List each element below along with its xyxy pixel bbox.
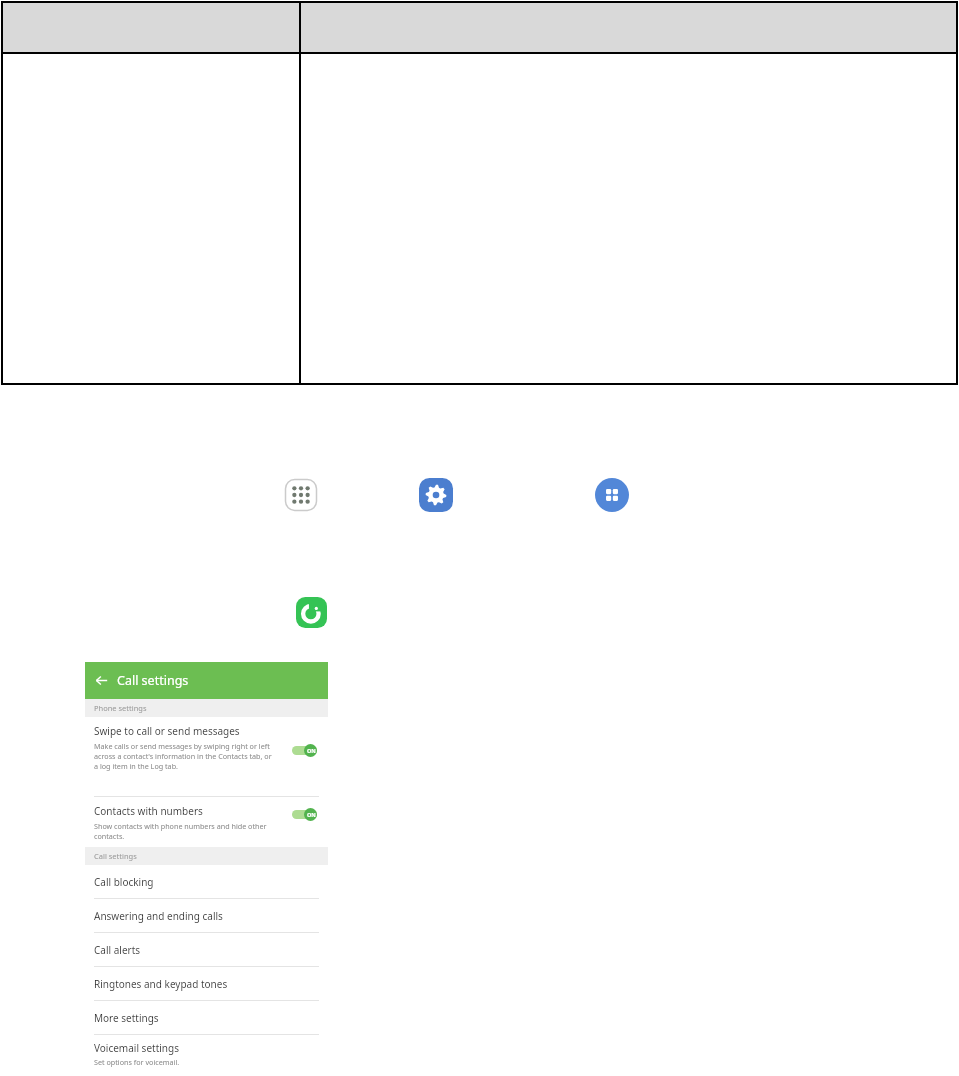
button[interactable]: Back	[94, 673, 109, 688]
staticText: Answering and ending calls	[94, 909, 223, 923]
staticText: Ringtones and keypad tones	[94, 977, 228, 991]
staticText: Show contacts with phone numbers and hid…	[94, 821, 276, 841]
button[interactable]: Settings	[419, 478, 453, 512]
button[interactable]: Answering and ending calls	[85, 899, 328, 932]
staticText: Call settings	[117, 672, 189, 689]
button[interactable]: Apps	[284, 478, 318, 512]
button[interactable]: Swipe to call or send messages	[85, 717, 328, 796]
staticText: Voicemail settings	[94, 1041, 179, 1055]
staticText: Phone settings	[94, 703, 147, 713]
button[interactable]: Apps grid	[595, 478, 629, 512]
button[interactable]: Toggle on	[292, 808, 317, 821]
button[interactable]: Contacts with numbers	[85, 797, 328, 847]
staticText: Call alerts	[94, 943, 141, 957]
staticText: Swipe to call or send messages	[94, 724, 240, 738]
staticText: ON	[307, 747, 316, 754]
button[interactable]: Call alerts	[85, 933, 328, 966]
button[interactable]: More settings	[85, 1001, 328, 1034]
button[interactable]: Voicemail settings	[85, 1035, 328, 1069]
staticText: Call blocking	[94, 875, 154, 889]
staticText: Set options for voicemail.	[94, 1057, 180, 1067]
button[interactable]: Call blocking	[85, 865, 328, 898]
button[interactable]: Ringtones and keypad tones	[85, 967, 328, 1000]
button[interactable]: Back	[85, 662, 328, 699]
staticText: Contacts with numbers	[94, 804, 203, 818]
staticText: ON	[307, 811, 316, 818]
staticText: Make calls or send messages by swiping r…	[94, 741, 276, 771]
button[interactable]: Phone	[296, 597, 327, 628]
staticText: Call settings	[94, 851, 137, 861]
staticText: More settings	[94, 1011, 159, 1025]
button[interactable]: Toggle on	[292, 744, 317, 757]
